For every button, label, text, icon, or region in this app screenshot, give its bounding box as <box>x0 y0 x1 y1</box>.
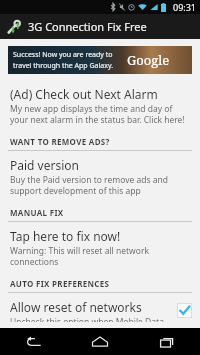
staticText: Tap here to fix now! <box>10 228 121 244</box>
button[interactable]: Allow reset of networks <box>0 293 200 328</box>
staticText: WANT TO REMOVE ADS? <box>10 136 110 147</box>
staticText: AUTO FIX PREFERENCES <box>10 278 110 289</box>
button[interactable]: Back <box>13 328 53 355</box>
staticText: My new app displays the time and day of … <box>10 103 190 125</box>
staticText: Allow reset of networks <box>10 299 142 315</box>
button[interactable]: Home <box>80 328 120 355</box>
button[interactable]: Paid version <box>0 151 200 201</box>
staticText: Paid version <box>10 157 79 173</box>
button[interactable]: (Ad) Check out Next Alarm <box>0 80 200 130</box>
staticText: Warning: This will reset all network con… <box>10 245 190 267</box>
staticText: Success! Now you are ready to <box>13 50 113 60</box>
staticText: travel through the App Galaxy. <box>13 61 114 71</box>
staticText: MANUAL FIX <box>10 207 64 218</box>
staticText: 09:31 <box>173 1 197 13</box>
staticText: 3G Connection Fix Free <box>28 19 147 34</box>
other: App icon <box>6 19 22 35</box>
staticText: Buy the Paid version to remove ads and s… <box>10 174 190 196</box>
staticText: Google <box>127 51 170 69</box>
other: Checkbox, checked <box>177 303 192 318</box>
button[interactable]: Tap here to fix now! <box>0 222 200 272</box>
staticText: Uncheck this option when Mobile Data set… <box>10 316 171 322</box>
staticText: (Ad) Check out Next Alarm <box>10 86 158 102</box>
button[interactable]: Recent apps <box>147 328 187 355</box>
button[interactable]: Success! Now you are ready to <box>8 46 192 74</box>
